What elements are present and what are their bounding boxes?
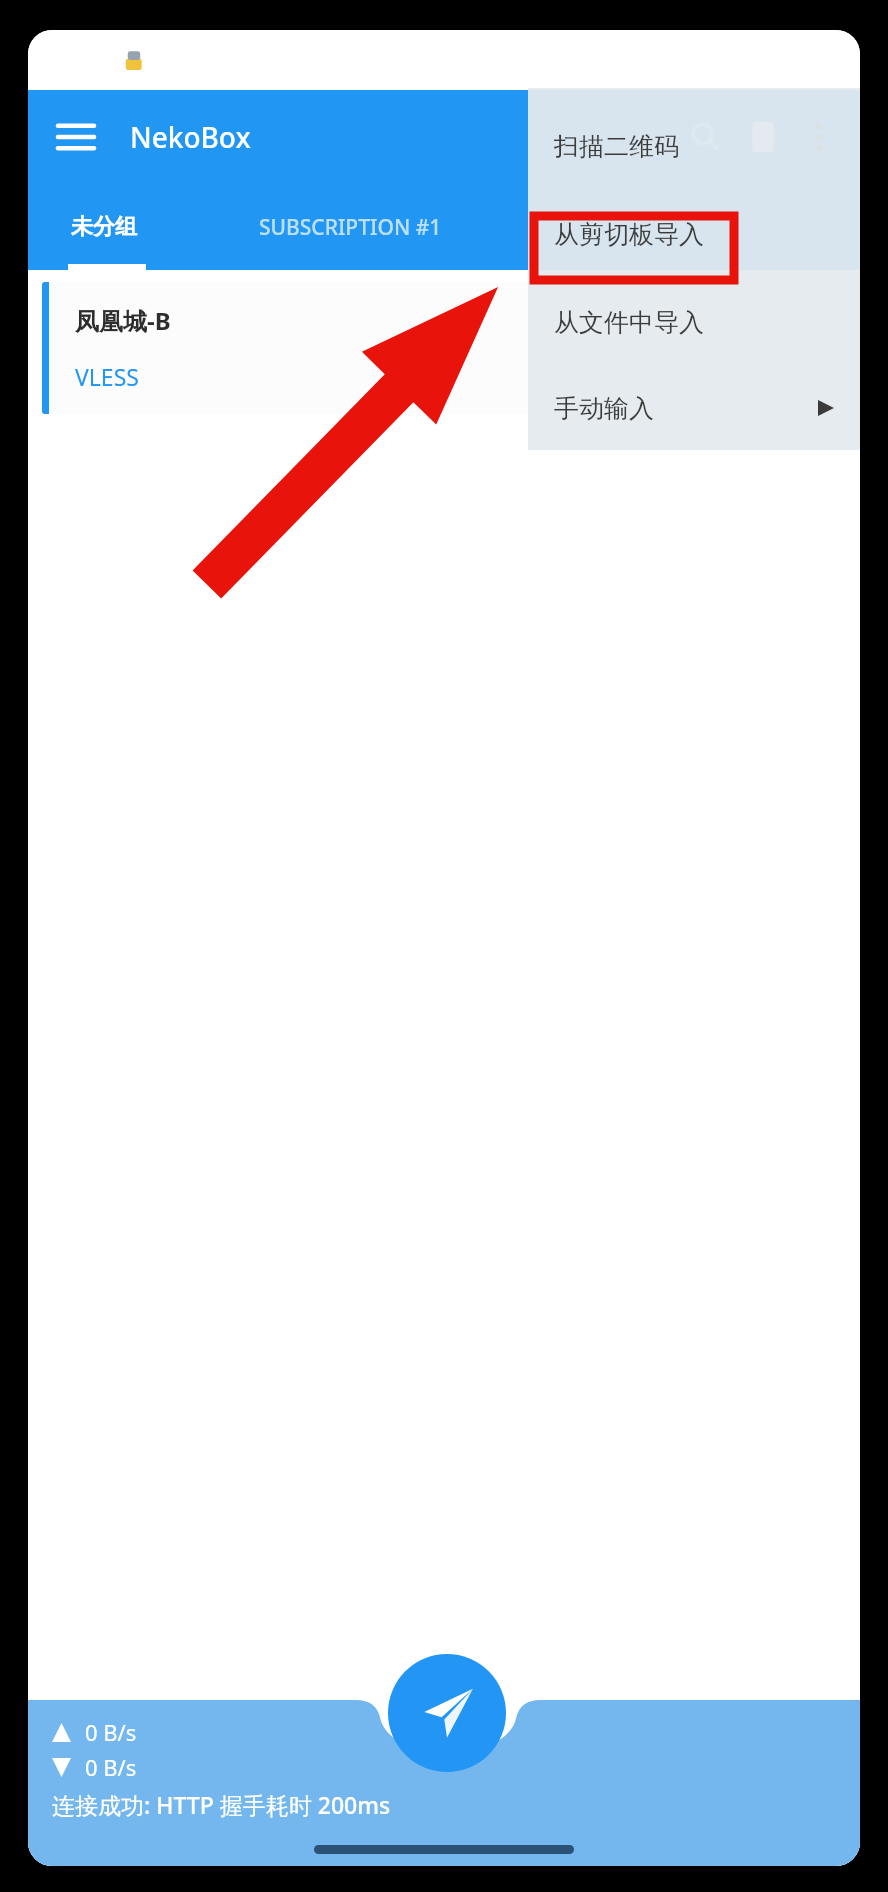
staticText: 手动输入 [554, 393, 654, 424]
button[interactable]: Import from file [734, 108, 792, 166]
staticText: 未分组 [71, 213, 137, 241]
staticText: SUBSCRIPTION #1 [259, 213, 442, 242]
staticText: 凤凰城-B [75, 304, 171, 337]
staticText: 0 B/s [85, 1752, 137, 1782]
staticText: VLESS [75, 361, 139, 392]
button[interactable]: Open navigation drawer [46, 107, 106, 167]
button[interactable]: 扫描二维码 [528, 102, 860, 190]
button[interactable]: 从文件中导入 [528, 278, 860, 366]
button[interactable]: 凤凰城-B [42, 282, 846, 414]
button[interactable]: Connect [388, 1654, 506, 1772]
staticText: 从文件中导入 [554, 307, 704, 338]
button[interactable]: 手动输入 [528, 366, 860, 450]
button[interactable]: 未分组 [28, 184, 180, 270]
staticText: 0 B/s [85, 1717, 137, 1747]
staticText: 连接成功: HTTP 握手耗时 200ms [52, 1789, 391, 1820]
button[interactable]: Search [676, 108, 734, 166]
staticText: NekoBox [130, 118, 251, 156]
button[interactable]: 从剪切板导入 [528, 190, 860, 278]
button[interactable]: SUBSCRIPTION #1 [180, 184, 520, 270]
staticText: 从剪切板导入 [554, 219, 704, 250]
staticText: 扫描二维码 [554, 131, 679, 162]
